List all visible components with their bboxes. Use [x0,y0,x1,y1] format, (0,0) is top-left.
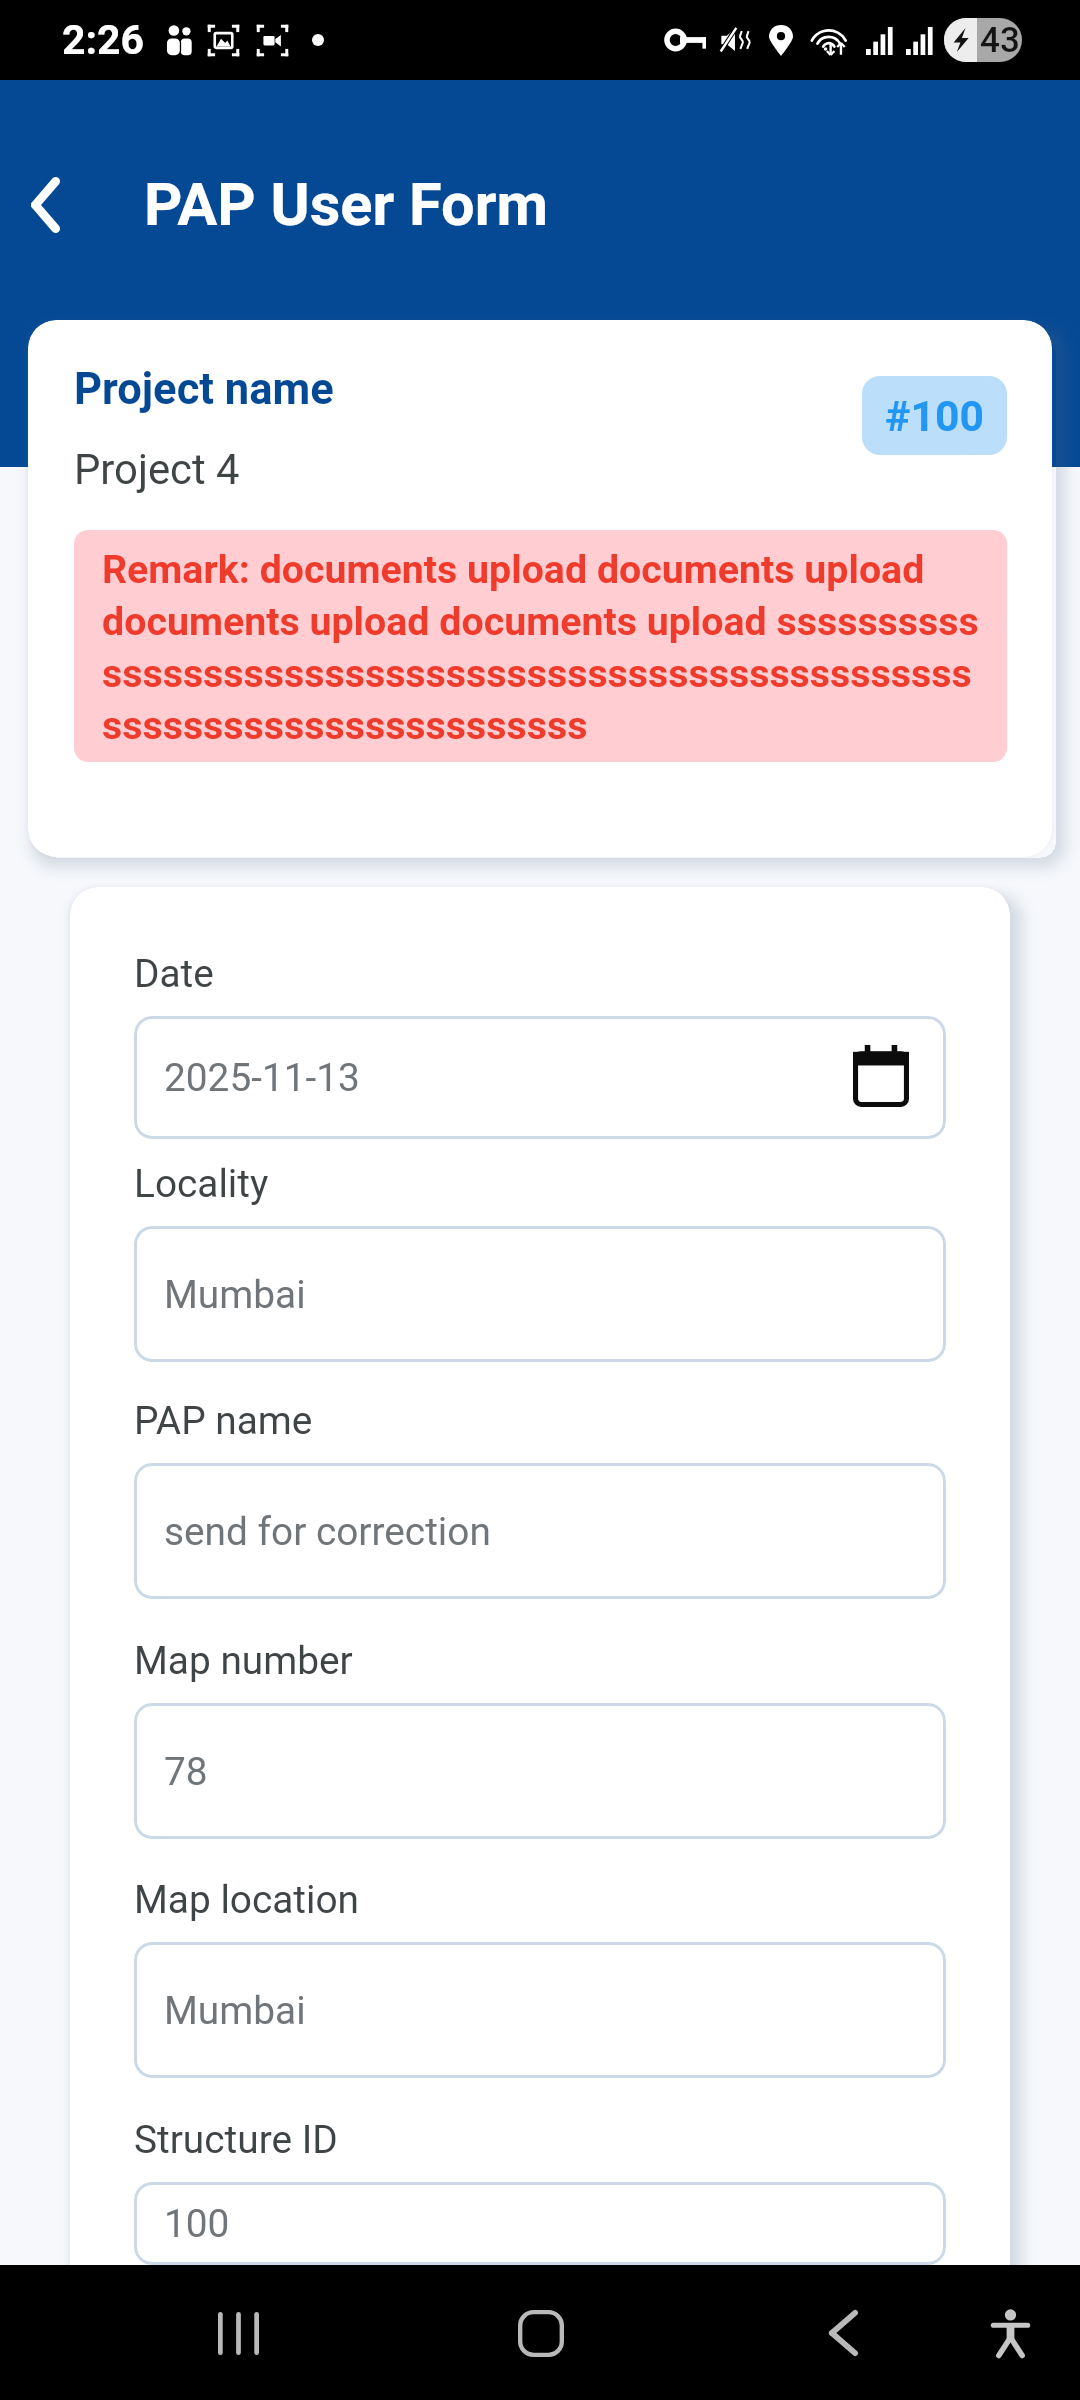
staticText: PAP User Form [144,170,548,240]
button[interactable]: Recent apps [185,2280,291,2386]
staticText: Map location [134,1877,360,1922]
button[interactable]: 78 [134,1703,946,1839]
button[interactable]: Mumbai [134,1942,946,2078]
button[interactable]: #100 [862,376,1007,455]
button[interactable]: Home [488,2280,594,2386]
staticText: Mumbai [164,1988,306,2033]
staticText: 2:26 [62,16,145,64]
button[interactable]: Back [0,145,90,265]
staticText: #100 [885,391,984,441]
button[interactable]: Accessibility [957,2280,1063,2386]
staticText: Mumbai [164,1272,306,1317]
button[interactable]: send for correction [134,1463,946,1599]
staticText: 78 [164,1749,208,1794]
staticText: Remark: documents upload documents uploa… [102,542,979,750]
staticText: 43 [980,20,1020,61]
button[interactable]: Back [790,2280,896,2386]
staticText: Date [134,951,214,996]
staticText: Map number [134,1638,353,1683]
staticText: PAP name [134,1398,313,1443]
staticText: 100 [164,2201,230,2246]
staticText: Project name [74,364,334,415]
staticText: Structure ID [134,2117,338,2162]
staticText: 2025-11-13 [164,1055,360,1100]
staticText: Locality [134,1161,269,1206]
button[interactable]: Mumbai [134,1226,946,1362]
staticText: send for correction [164,1509,491,1554]
staticText: Project 4 [74,445,240,494]
button[interactable]: 2025-11-13 [134,1016,946,1139]
button[interactable]: 100 [134,2182,946,2265]
